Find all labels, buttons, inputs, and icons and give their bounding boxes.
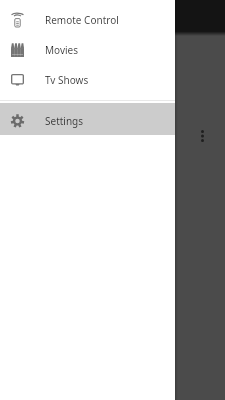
button[interactable]: More options — [193, 123, 211, 149]
button[interactable]: Remote Control — [0, 5, 175, 35]
button[interactable]: Settings — [0, 103, 175, 135]
staticText: Movies — [45, 43, 79, 57]
button[interactable]: Tv Shows — [0, 65, 175, 95]
button[interactable]: Movies — [0, 35, 175, 65]
staticText: Remote Control — [45, 13, 119, 27]
staticText: Settings — [45, 114, 84, 128]
staticText: Tv Shows — [45, 73, 89, 87]
